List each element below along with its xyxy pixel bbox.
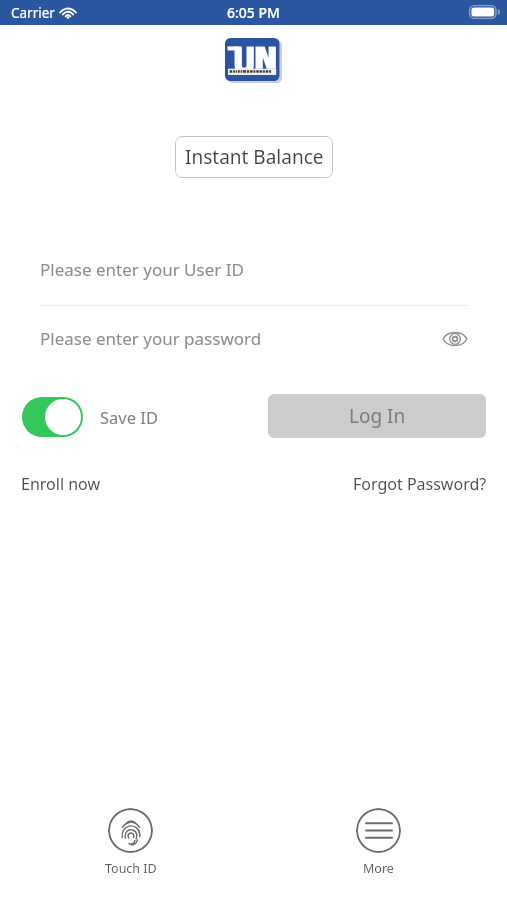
- staticText: Instant Balance: [185, 144, 324, 170]
- staticText: Log In: [349, 403, 406, 429]
- staticText: Forgot Password?: [353, 473, 487, 495]
- button[interactable]: Touch ID: [102, 808, 159, 877]
- button[interactable]: Log In: [268, 394, 486, 438]
- button[interactable]: Please enter your User ID: [40, 245, 468, 293]
- button[interactable]: Forgot Password?: [353, 471, 487, 497]
- staticText: Carrier: [11, 4, 55, 22]
- staticText: Enroll now: [21, 473, 100, 495]
- staticText: Please enter your User ID: [40, 258, 244, 281]
- button[interactable]: Enroll now: [21, 471, 100, 497]
- staticText: More: [363, 860, 394, 877]
- button[interactable]: Show password: [436, 321, 474, 357]
- staticText: Touch ID: [105, 860, 157, 877]
- button[interactable]: Instant Balance: [175, 136, 333, 178]
- button[interactable]: More: [350, 808, 407, 877]
- button[interactable]: Save ID: [22, 396, 158, 437]
- staticText: 6:05 PM: [227, 3, 280, 22]
- staticText: Please enter your password: [40, 327, 262, 350]
- button[interactable]: Please enter your password: [40, 314, 468, 362]
- staticText: Save ID: [100, 406, 158, 428]
